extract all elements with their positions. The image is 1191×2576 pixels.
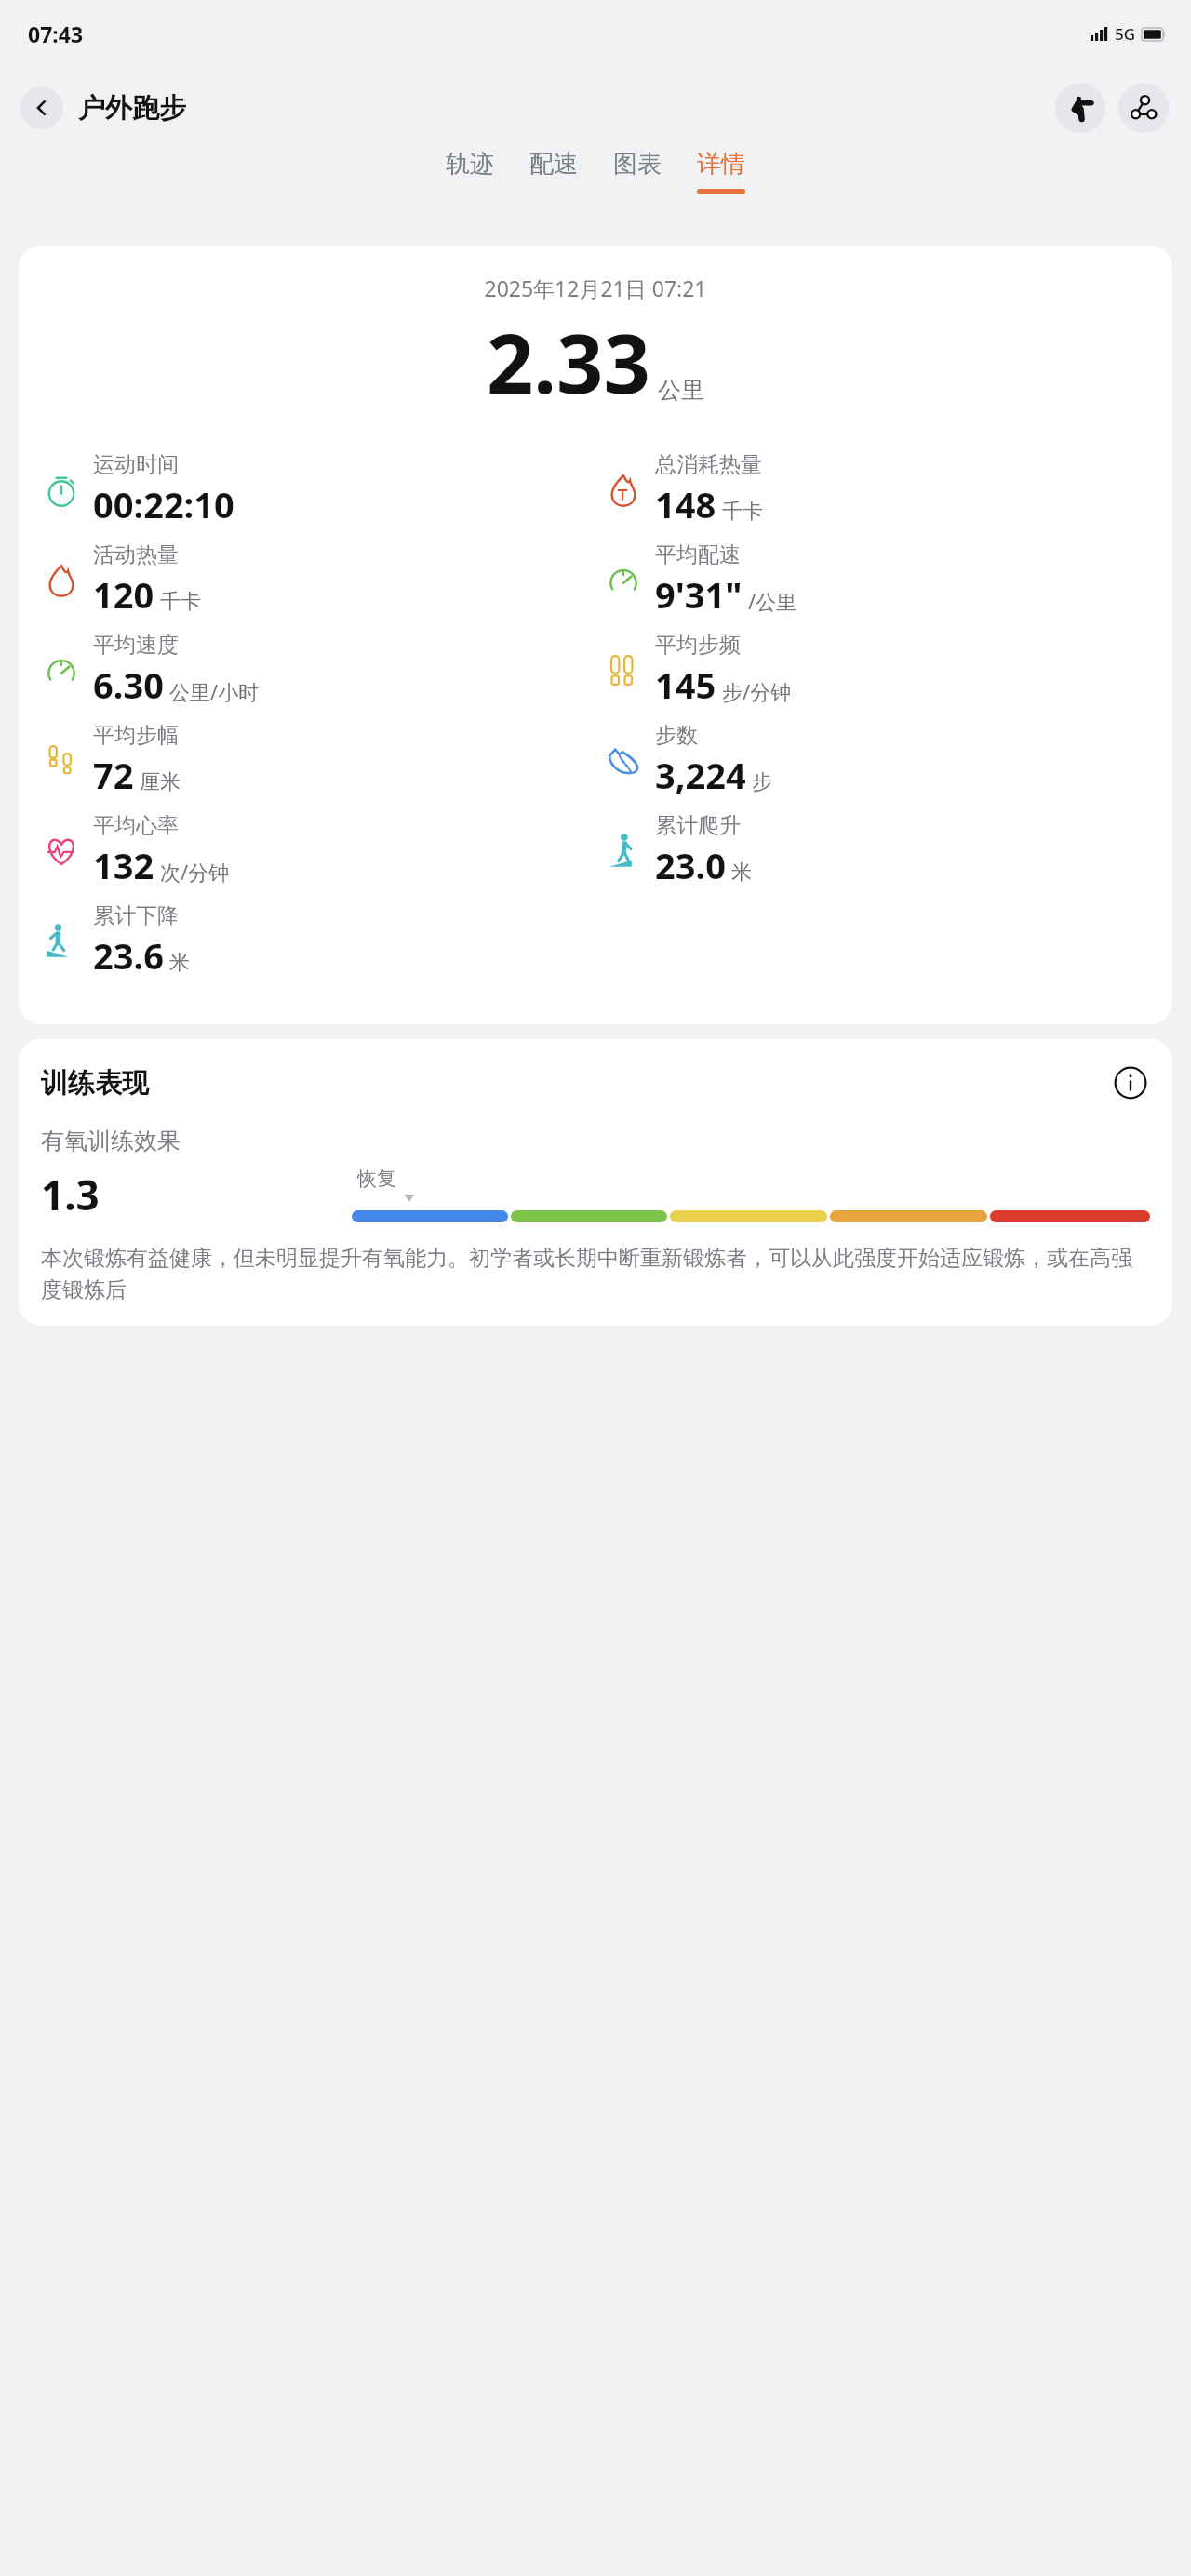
button[interactable]: 累计爬升	[603, 812, 1172, 889]
staticText: 厘米	[140, 769, 181, 795]
button[interactable]: 平均速度	[41, 632, 595, 709]
staticText: 训练表现	[41, 1066, 149, 1101]
button[interactable]: 总消耗热量	[603, 451, 1172, 528]
staticText: 轨迹	[446, 149, 494, 180]
staticText: 2025年12月21日 07:21	[19, 274, 1172, 302]
staticText: 累计爬升	[655, 812, 741, 839]
staticText: 145	[655, 661, 716, 709]
button[interactable]: 2025年12月21日 07:21	[19, 246, 1172, 1024]
staticText: 07:43	[28, 20, 84, 48]
button[interactable]: 平均配速	[603, 541, 1172, 619]
button[interactable]: Info	[1111, 1063, 1150, 1102]
staticText: 3,224	[655, 751, 746, 799]
button[interactable]: Back	[20, 87, 63, 129]
staticText: 有氧训练效果	[41, 1127, 181, 1155]
button[interactable]: 运动时间	[41, 451, 595, 528]
staticText: 公里/小时	[169, 677, 260, 705]
button[interactable]: 累计下降	[41, 902, 595, 980]
staticText: 次/分钟	[160, 858, 230, 886]
button[interactable]: 配速	[529, 149, 578, 189]
staticText: 总消耗热量	[655, 451, 762, 478]
staticText: 步/分钟	[722, 677, 792, 705]
staticText: 千卡	[722, 499, 763, 525]
staticText: 平均步幅	[93, 722, 179, 749]
button[interactable]: 平均步频	[603, 632, 1172, 709]
staticText: 9'31"	[655, 570, 743, 619]
staticText: 图表	[613, 149, 662, 180]
staticText: 公里	[658, 376, 704, 405]
staticText: 米	[731, 860, 752, 886]
staticText: 平均步频	[655, 632, 741, 659]
staticText: 恢复	[357, 1167, 396, 1191]
staticText: 120	[93, 570, 154, 619]
staticText: 00:22:10	[93, 480, 234, 528]
staticText: 户外跑步	[78, 91, 186, 126]
button[interactable]: 活动热量	[41, 541, 595, 619]
button[interactable]: Activity type	[1055, 83, 1105, 133]
button[interactable]: 图表	[613, 149, 662, 189]
button[interactable]: 平均心率	[41, 812, 595, 889]
button[interactable]: 训练表现	[19, 1039, 1172, 1326]
staticText: 132	[93, 841, 154, 889]
staticText: 配速	[529, 149, 578, 180]
staticText: 72	[93, 751, 134, 799]
staticText: 步数	[655, 722, 698, 749]
staticText: 运动时间	[93, 451, 179, 478]
staticText: 1.3	[41, 1167, 100, 1222]
staticText: 本次锻炼有益健康，但未明显提升有氧能力。初学者或长期中断重新锻炼者，可以从此强度…	[41, 1245, 1150, 1303]
staticText: 千卡	[160, 589, 201, 615]
staticText: 米	[169, 950, 190, 976]
staticText: 累计下降	[93, 902, 179, 929]
button[interactable]: 步数	[603, 722, 1172, 799]
staticText: 步	[752, 769, 772, 795]
button[interactable]: 平均步幅	[41, 722, 595, 799]
staticText: 6.30	[93, 661, 164, 709]
staticText: /公里	[748, 587, 797, 615]
staticText: 平均配速	[655, 541, 741, 568]
button[interactable]: Share	[1118, 83, 1169, 133]
staticText: 5G	[1115, 23, 1136, 45]
button[interactable]: 详情	[697, 149, 745, 194]
staticText: 148	[655, 480, 716, 528]
button[interactable]: 轨迹	[446, 149, 494, 189]
staticText: 23.6	[93, 931, 164, 980]
staticText: 23.0	[655, 841, 726, 889]
staticText: 平均速度	[93, 632, 179, 659]
staticText: 活动热量	[93, 541, 179, 568]
staticText: 详情	[697, 149, 745, 180]
staticText: 平均心率	[93, 812, 179, 839]
staticText: 2.33	[487, 306, 650, 418]
